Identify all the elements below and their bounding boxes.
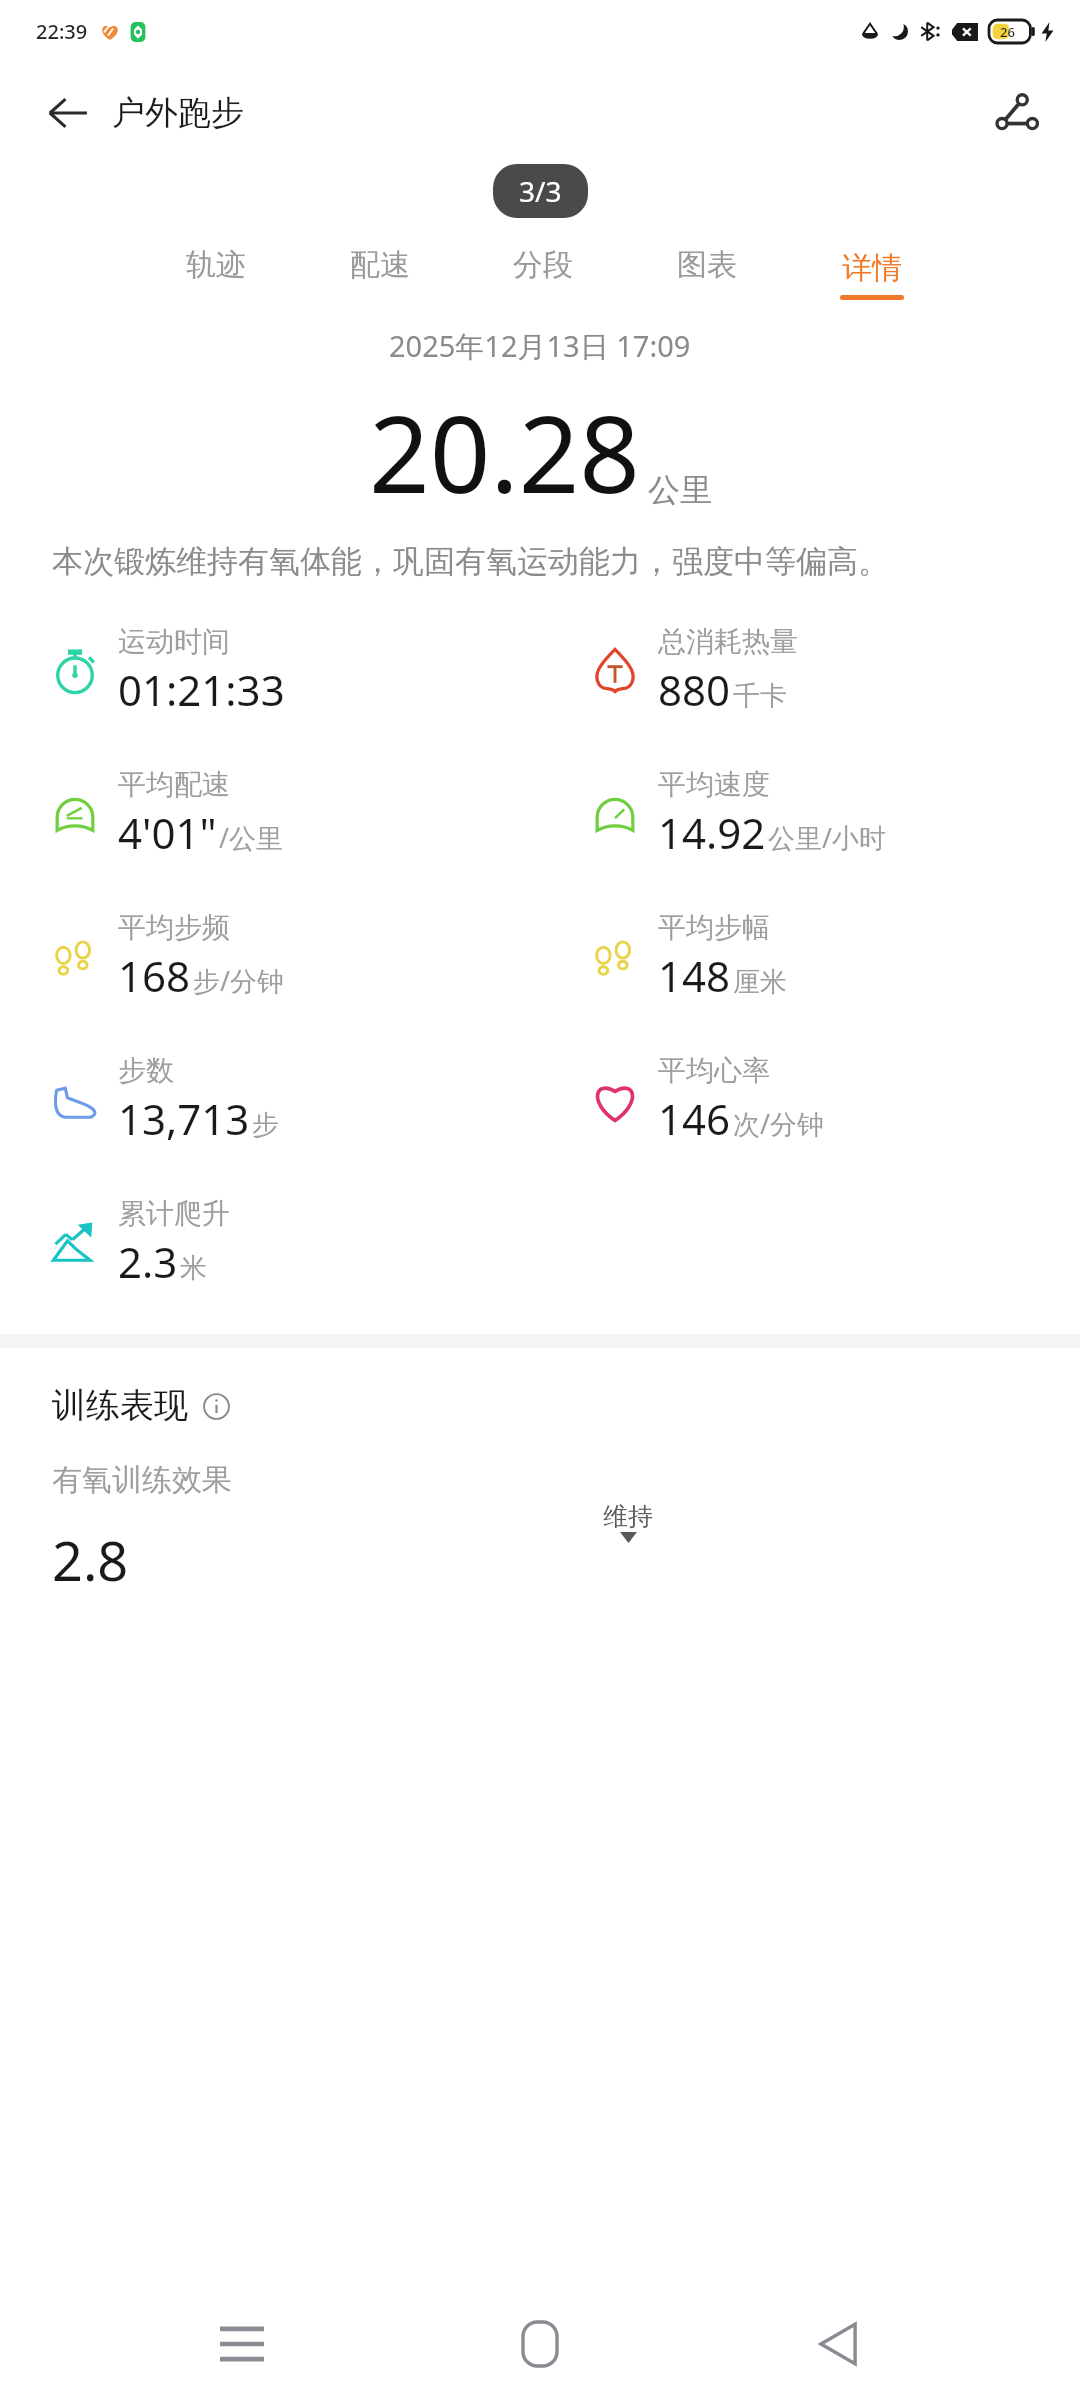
button[interactable]: 配速 <box>350 246 410 300</box>
staticText: 详情 <box>842 249 902 287</box>
staticText: 168 <box>118 947 191 1004</box>
button[interactable]: 图表 <box>677 246 737 300</box>
button[interactable]: 累计爬升 <box>0 1171 540 1314</box>
staticText: 平均心率 <box>658 1053 770 1088</box>
button[interactable]: 平均步频 <box>0 885 540 1028</box>
button[interactable]: 总消耗热量 <box>540 599 1080 742</box>
button[interactable]: 轨迹 <box>186 246 246 300</box>
staticText: 20.28 <box>369 380 640 524</box>
staticText: 13,713 <box>118 1090 250 1147</box>
button[interactable]: 平均配速 <box>0 742 540 885</box>
button[interactable]: 平均心率 <box>540 1028 1080 1171</box>
staticText: 2.3 <box>118 1233 178 1290</box>
staticText: 平均步频 <box>118 910 230 945</box>
staticText: 步数 <box>118 1053 174 1088</box>
staticText: 平均配速 <box>118 767 230 802</box>
staticText: 次/分钟 <box>733 1105 825 1142</box>
staticText: 公里 <box>648 470 712 510</box>
button[interactable]: 平均步幅 <box>540 885 1080 1028</box>
staticText: 米 <box>180 1251 207 1285</box>
staticText: 146 <box>658 1090 731 1147</box>
staticText: 维持 <box>603 1501 653 1532</box>
staticText: 有氧训练效果 <box>52 1461 232 1499</box>
staticText: 本次锻炼维持有氧体能，巩固有氧运动能力，强度中等偏高。 <box>52 542 1028 581</box>
staticText: 平均速度 <box>658 767 770 802</box>
button[interactable]: Share <box>984 80 1050 146</box>
button[interactable]: Home <box>484 2288 596 2400</box>
staticText: 运动时间 <box>118 624 230 659</box>
button[interactable]: 分段 <box>513 246 573 300</box>
staticText: 分段 <box>513 246 573 284</box>
staticText: 公里/小时 <box>768 819 887 856</box>
staticText: 2025年12月13日 17:09 <box>389 326 691 366</box>
staticText: 148 <box>658 947 731 1004</box>
staticText: 轨迹 <box>186 246 246 284</box>
staticText: /公里 <box>219 819 284 856</box>
staticText: 步 <box>252 1108 279 1142</box>
staticText: 4'01" <box>118 804 217 861</box>
button[interactable]: Info <box>200 1390 232 1422</box>
button[interactable]: Back <box>38 83 98 143</box>
staticText: 训练表现 <box>52 1384 188 1427</box>
staticText: 2.8 <box>52 1523 129 1597</box>
staticText: 3/3 <box>519 172 562 210</box>
button[interactable]: 步数 <box>0 1028 540 1171</box>
staticText: 户外跑步 <box>112 92 244 134</box>
staticText: 配速 <box>350 246 410 284</box>
staticText: 累计爬升 <box>118 1196 230 1231</box>
button[interactable]: Recent apps <box>186 2288 298 2400</box>
staticText: 01:21:33 <box>118 661 285 718</box>
staticText: 图表 <box>677 246 737 284</box>
button[interactable]: 平均速度 <box>540 742 1080 885</box>
staticText: 880 <box>658 661 731 718</box>
staticText: 千卡 <box>733 679 787 713</box>
staticText: 厘米 <box>733 965 787 999</box>
staticText: 14.92 <box>658 804 766 861</box>
staticText: 26 <box>1000 23 1015 41</box>
button[interactable]: 运动时间 <box>0 599 540 742</box>
button[interactable]: Back <box>782 2288 894 2400</box>
staticText: 总消耗热量 <box>658 624 798 659</box>
staticText: 22:39 <box>36 18 88 45</box>
staticText: 平均步幅 <box>658 910 770 945</box>
staticText: 步/分钟 <box>193 962 285 999</box>
button[interactable]: 详情 <box>840 249 904 300</box>
